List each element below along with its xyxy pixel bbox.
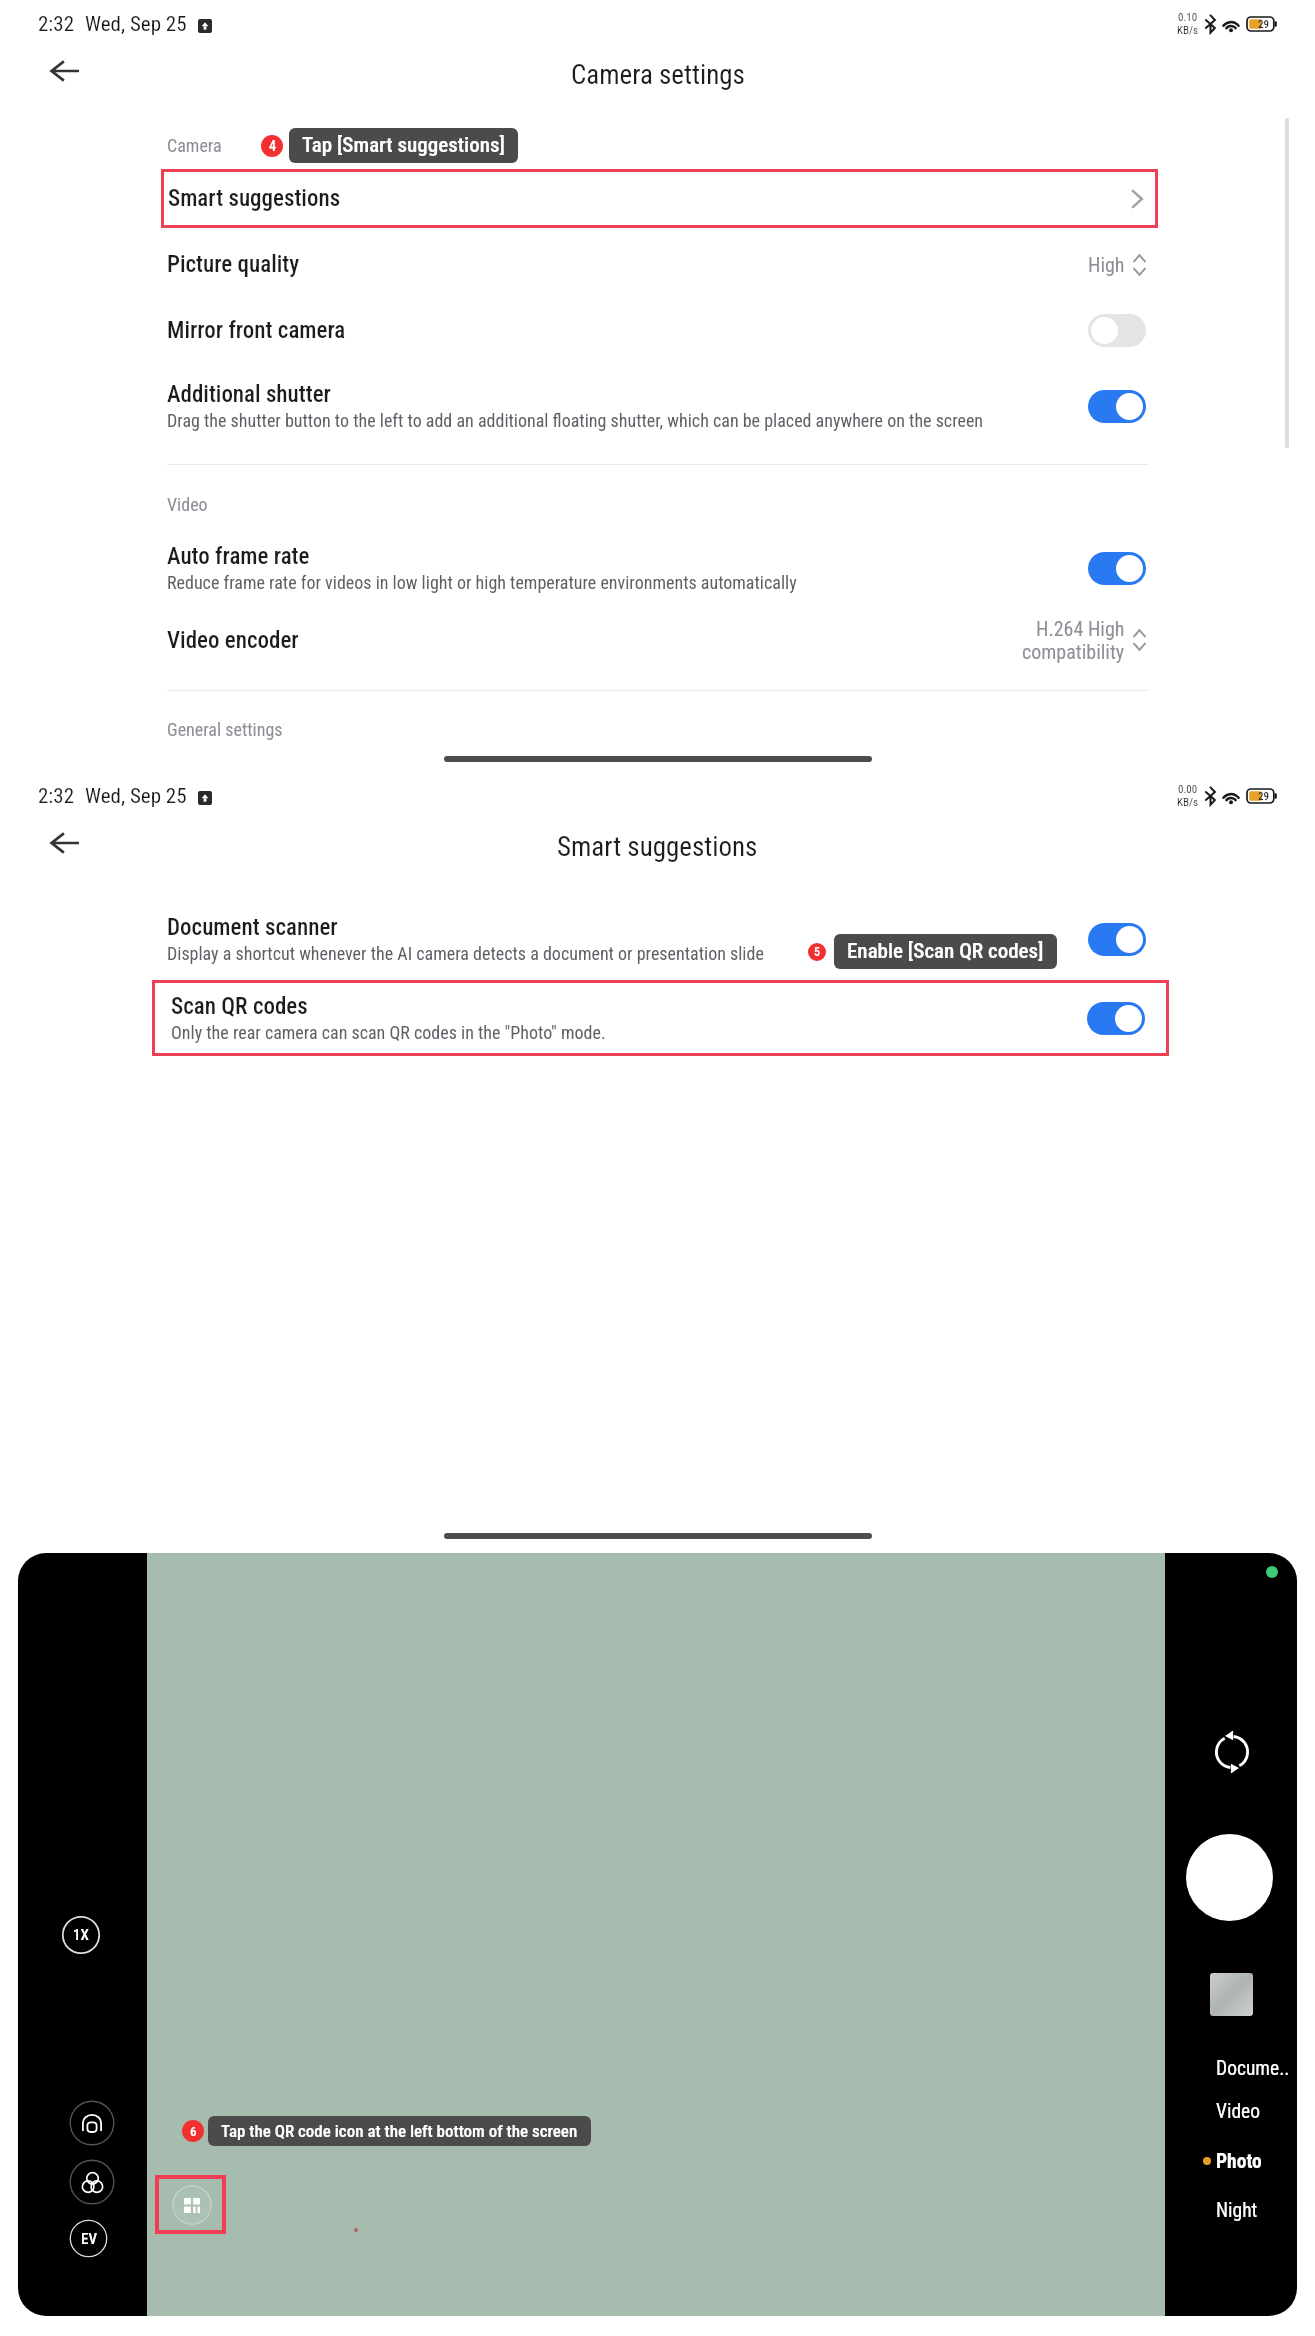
staticText: Scan QR codes <box>171 993 308 1020</box>
staticText: Camera <box>167 135 222 156</box>
staticText: H.264 High <box>1036 617 1125 640</box>
button[interactable]: Scan QR codes <box>152 980 1169 1056</box>
staticText: 2:32 <box>38 784 75 809</box>
staticText: Video <box>1216 2100 1261 2123</box>
button[interactable]: Document scanner <box>0 903 1315 975</box>
button[interactable]: On <box>1087 1002 1145 1035</box>
button[interactable]: Mirror front camera <box>0 299 1315 361</box>
staticText: 2:32 <box>38 12 75 37</box>
staticText: compatibility <box>1022 640 1125 663</box>
button[interactable]: Off <box>1088 314 1146 347</box>
staticText: 29 <box>1258 18 1269 31</box>
staticText: 4 <box>269 138 276 154</box>
button[interactable]: Back <box>37 820 93 876</box>
button[interactable]: Auto frame rate <box>0 532 1315 604</box>
staticText: Drag the shutter button to the left to a… <box>167 410 984 431</box>
button[interactable]: Video encoder <box>0 604 1315 676</box>
button[interactable]: Shutter <box>1186 1834 1273 1921</box>
button[interactable]: Night <box>1168 2192 1297 2228</box>
button[interactable]: Video <box>1168 2093 1297 2129</box>
staticText: 0.00 <box>1178 783 1198 796</box>
button[interactable]: Additional shutter <box>0 370 1315 442</box>
button[interactable]: On <box>1088 390 1146 423</box>
button[interactable]: Gallery <box>1210 1973 1253 2016</box>
staticText: KB/s <box>1177 796 1199 809</box>
staticText: Video encoder <box>167 627 299 654</box>
staticText: Display a shortcut whenever the AI camer… <box>167 943 764 964</box>
staticText: Enable [Scan QR codes] <box>847 939 1044 964</box>
button[interactable]: Photo <box>1168 2143 1297 2179</box>
staticText: Picture quality <box>167 251 300 278</box>
staticText: 6 <box>190 2124 197 2139</box>
staticText: Wed, Sep 25 <box>85 12 187 37</box>
staticText: Document scanner <box>167 914 338 941</box>
staticText: High <box>1088 253 1125 276</box>
staticText: Reduce frame rate for videos in low ligh… <box>167 572 797 593</box>
button[interactable]: Docume.. <box>1168 2050 1297 2086</box>
staticText: Tap the QR code icon at the left bottom … <box>221 2121 578 2141</box>
button[interactable]: Picture quality <box>0 233 1315 295</box>
staticText: 0.10 <box>1178 11 1198 24</box>
staticText: Auto frame rate <box>167 543 310 570</box>
staticText: Camera settings <box>571 59 745 91</box>
button[interactable]: Filters <box>69 2159 115 2205</box>
staticText: 5 <box>814 945 820 959</box>
staticText: Tap [Smart suggestions] <box>302 133 505 158</box>
staticText: Wed, Sep 25 <box>85 784 187 809</box>
button[interactable]: Back <box>37 48 93 104</box>
button[interactable]: Smart suggestions <box>161 169 1158 228</box>
button[interactable]: 1X <box>61 1915 101 1955</box>
button[interactable]: Switch camera <box>1206 1726 1258 1778</box>
button[interactable]: On <box>1088 552 1146 585</box>
staticText: Video <box>167 494 208 515</box>
staticText: Night <box>1216 2199 1258 2222</box>
staticText: 29 <box>1258 790 1269 803</box>
button[interactable]: Portrait mode <box>69 2100 115 2146</box>
staticText: 1X <box>73 1926 89 1944</box>
button[interactable]: Scan QR code <box>155 2175 226 2234</box>
staticText: Smart suggestions <box>557 831 758 863</box>
staticText: Only the rear camera can scan QR codes i… <box>171 1022 606 1043</box>
staticText: EV <box>81 2230 97 2248</box>
staticText: KB/s <box>1177 24 1199 37</box>
staticText: Mirror front camera <box>167 317 346 344</box>
staticText: Docume.. <box>1216 2057 1290 2080</box>
staticText: Additional shutter <box>167 381 331 408</box>
staticText: Photo <box>1216 2150 1262 2173</box>
button[interactable]: On <box>1088 923 1146 956</box>
button[interactable]: EV <box>69 2219 108 2258</box>
staticText: Smart suggestions <box>168 185 341 212</box>
staticText: General settings <box>167 719 283 740</box>
